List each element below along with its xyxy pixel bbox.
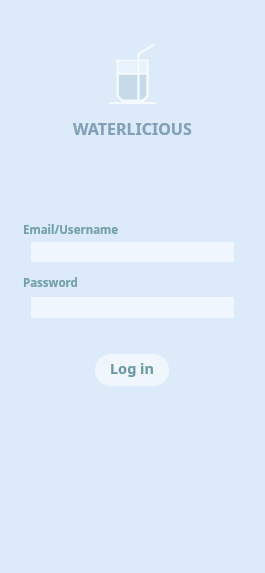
staticText: Log in [110,358,154,378]
staticText: Password [23,275,78,291]
staticText: WATERLICIOUS [73,118,192,140]
staticText: Email/Username [23,222,119,238]
button[interactable]: Log in [95,354,169,386]
other: Waterlicious logo [108,42,157,106]
